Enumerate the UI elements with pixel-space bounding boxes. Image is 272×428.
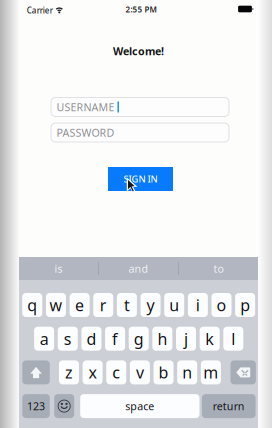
button[interactable]: to (179, 257, 258, 280)
staticText: 123 (27, 399, 45, 413)
button[interactable]: p (235, 293, 255, 317)
button[interactable]: x (83, 360, 103, 384)
button[interactable]: d (81, 327, 101, 351)
staticText: h (157, 328, 167, 349)
button[interactable]: Shift (22, 360, 50, 384)
button[interactable]: Emoji (54, 394, 74, 418)
button[interactable]: o (211, 293, 231, 317)
button[interactable]: f (105, 327, 125, 351)
button[interactable]: PASSWORD (51, 123, 229, 142)
staticText: u (169, 294, 179, 316)
staticText: b (159, 362, 169, 383)
button[interactable]: s (58, 327, 78, 351)
staticText: x (89, 362, 97, 383)
button[interactable]: b (154, 360, 174, 384)
button[interactable]: v (130, 360, 150, 384)
staticText: m (203, 362, 218, 383)
staticText: r (100, 294, 107, 316)
staticText: l (231, 328, 235, 349)
staticText: q (27, 294, 37, 316)
button[interactable]: l (223, 327, 243, 351)
staticText: v (136, 362, 144, 383)
staticText: z (65, 362, 73, 383)
button[interactable]: q (22, 293, 42, 317)
staticText: 2:55 PM (125, 4, 156, 15)
button[interactable]: r (93, 293, 113, 317)
button[interactable]: and (99, 257, 178, 280)
button[interactable]: w (46, 293, 66, 317)
staticText: USERNAME (56, 100, 114, 114)
button[interactable]: SIGN IN (108, 167, 173, 191)
button[interactable]: t (117, 293, 137, 317)
button[interactable]: Delete (230, 360, 256, 384)
button[interactable]: USERNAME (51, 97, 229, 116)
staticText: to (213, 261, 223, 276)
staticText: o (216, 294, 226, 316)
button[interactable]: g (129, 327, 149, 351)
staticText: s (64, 328, 72, 349)
staticText: d (86, 328, 96, 349)
staticText: p (240, 294, 250, 316)
button[interactable]: y (141, 293, 161, 317)
staticText: i (196, 294, 200, 316)
button[interactable]: a (34, 327, 54, 351)
staticText: a (40, 328, 49, 349)
staticText: t (124, 294, 130, 316)
button[interactable]: u (164, 293, 184, 317)
button[interactable]: space (80, 394, 199, 418)
staticText: is (54, 261, 62, 276)
button[interactable]: e (70, 293, 90, 317)
staticText: n (182, 362, 192, 383)
button[interactable]: m (201, 360, 221, 384)
staticText: PASSWORD (56, 125, 114, 140)
staticText: k (205, 328, 214, 349)
button[interactable]: j (176, 327, 196, 351)
button[interactable]: n (177, 360, 197, 384)
staticText: space (125, 399, 154, 413)
button[interactable]: i (188, 293, 208, 317)
staticText: Welcome! (113, 44, 164, 58)
staticText: j (184, 328, 188, 349)
button[interactable]: 123 (22, 394, 50, 418)
button[interactable]: return (202, 394, 256, 418)
button[interactable]: z (59, 360, 79, 384)
staticText: and (128, 261, 148, 276)
staticText: g (134, 328, 144, 349)
staticText: f (112, 328, 118, 349)
button[interactable]: k (200, 327, 220, 351)
staticText: Carrier (27, 5, 53, 16)
staticText: c (112, 362, 120, 383)
button[interactable]: is (19, 257, 98, 280)
button[interactable]: c (106, 360, 126, 384)
staticText: w (49, 294, 62, 316)
staticText: SIGN IN (123, 173, 157, 185)
staticText: y (147, 294, 155, 316)
staticText: e (75, 294, 84, 316)
button[interactable]: h (152, 327, 172, 351)
staticText: return (213, 399, 245, 413)
